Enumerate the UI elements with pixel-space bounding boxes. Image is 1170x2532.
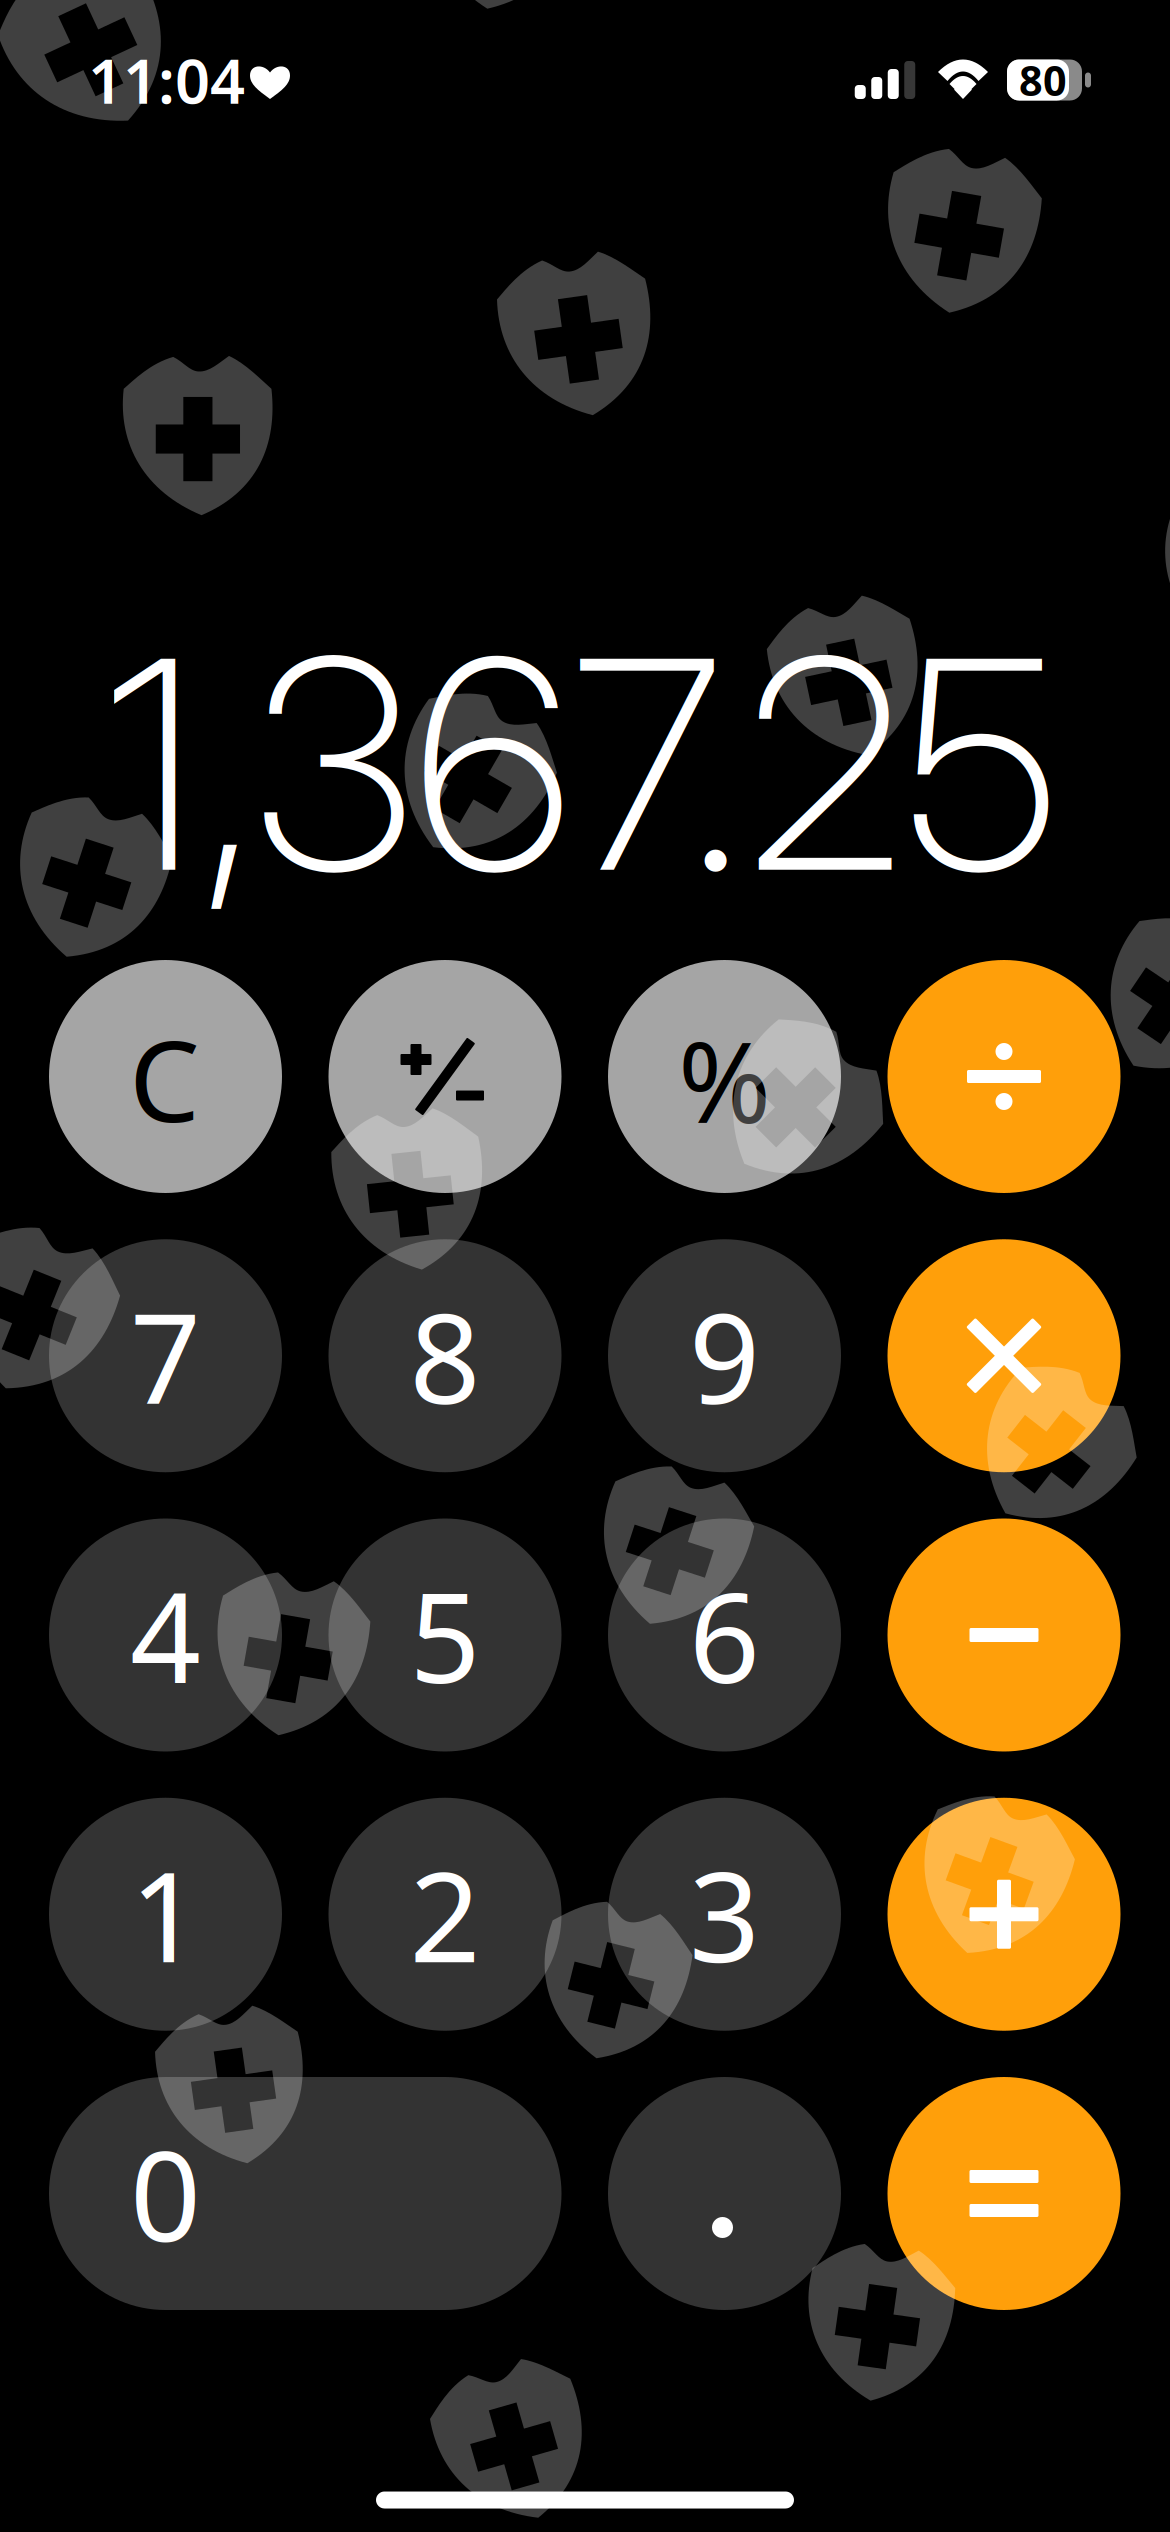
staticText: 5 [409,1553,480,1717]
staticText: 1 [130,1832,201,1997]
button[interactable]: % [608,960,841,1193]
button[interactable]: 6 [608,1518,841,1751]
button[interactable]: 4 [49,1518,282,1751]
button[interactable]: Divide [887,960,1120,1193]
staticText: 3 [689,1832,760,1997]
button[interactable]: C [49,960,282,1193]
button[interactable]: Plus Minus [328,960,561,1193]
button[interactable]: Minus [887,1518,1120,1751]
staticText: 4 [130,1553,201,1717]
staticText: % [678,1005,771,1154]
button[interactable]: 2 [328,1798,561,2031]
button[interactable]: 1 [49,1798,282,2031]
staticText: 7 [130,1273,201,1438]
staticText: 11:04 [88,39,245,121]
staticText: C [129,1004,200,1153]
button[interactable]: Plus [887,1798,1120,2031]
button[interactable]: 0 [49,2077,561,2310]
button[interactable]: Multiply [887,1239,1120,1472]
staticText: 0 [130,2111,201,2276]
staticText: 80 [1019,53,1067,107]
staticText: 9 [689,1273,760,1438]
button[interactable]: 3 [608,1798,841,2031]
button[interactable]: Equals [887,2077,1120,2310]
button[interactable]: 5 [328,1518,561,1751]
staticText: 6 [689,1553,760,1717]
button[interactable]: 9 [608,1239,841,1472]
button[interactable]: 8 [328,1239,561,1472]
staticText: 2 [409,1832,480,1997]
staticText: 8 [409,1273,480,1438]
button[interactable]: 7 [49,1239,282,1472]
staticText: 1,367.25 [104,588,1058,940]
button[interactable]: Decimal point [608,2077,841,2310]
